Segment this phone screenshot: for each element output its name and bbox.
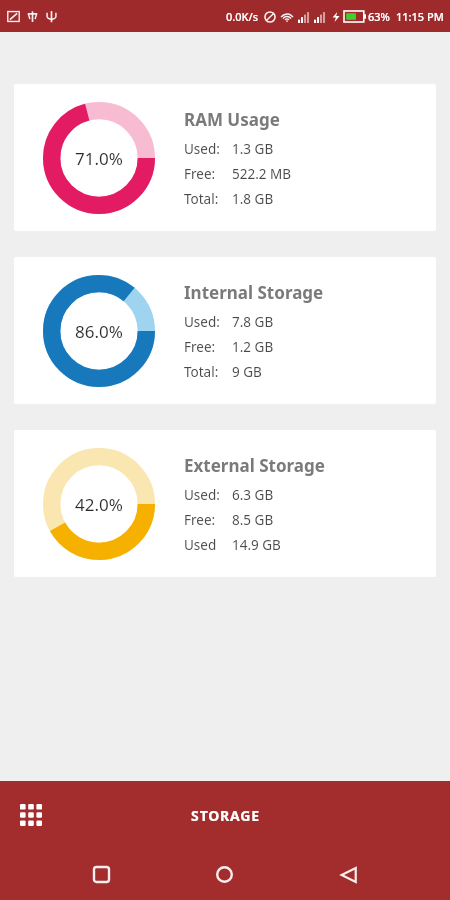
button[interactable]: 86.0% <box>14 257 436 404</box>
staticText: Used <box>184 536 217 554</box>
staticText: STORAGE <box>191 806 260 825</box>
staticText: 86.0% <box>75 320 123 343</box>
staticText: Total: <box>184 363 219 381</box>
staticText: 1.8 GB <box>232 190 274 208</box>
staticText: 14.9 GB <box>232 536 281 554</box>
button[interactable]: 71.0% <box>14 84 436 231</box>
staticText: 11:15 PM <box>396 9 444 24</box>
button[interactable]: Apps <box>10 794 52 836</box>
staticText: RAM Usage <box>184 108 280 131</box>
staticText: 9 GB <box>232 363 262 381</box>
button[interactable]: Recents <box>80 853 123 896</box>
button[interactable]: Home <box>202 852 247 897</box>
staticText: 1.3 GB <box>232 140 274 158</box>
staticText: 8.5 GB <box>232 511 274 529</box>
staticText: 1.2 GB <box>232 338 274 356</box>
staticText: 0.0K/s <box>226 9 259 24</box>
staticText: Free: <box>184 338 216 356</box>
button[interactable]: 42.0% <box>14 430 436 577</box>
staticText: 63% <box>368 9 390 24</box>
staticText: 71.0% <box>75 147 123 170</box>
staticText: Free: <box>184 165 216 183</box>
staticText: 42.0% <box>75 493 123 516</box>
staticText: 522.2 MB <box>232 165 292 183</box>
staticText: Internal Storage <box>184 281 324 304</box>
staticText: Total: <box>184 190 219 208</box>
staticText: External Storage <box>184 454 325 477</box>
staticText: Used: <box>184 140 220 158</box>
staticText: Free: <box>184 511 216 529</box>
staticText: 6.3 GB <box>232 486 274 504</box>
button[interactable]: STORAGE <box>173 796 278 835</box>
button[interactable]: Back <box>327 853 371 897</box>
staticText: 7.8 GB <box>232 313 274 331</box>
staticText: Used: <box>184 313 220 331</box>
staticText: Used: <box>184 486 220 504</box>
